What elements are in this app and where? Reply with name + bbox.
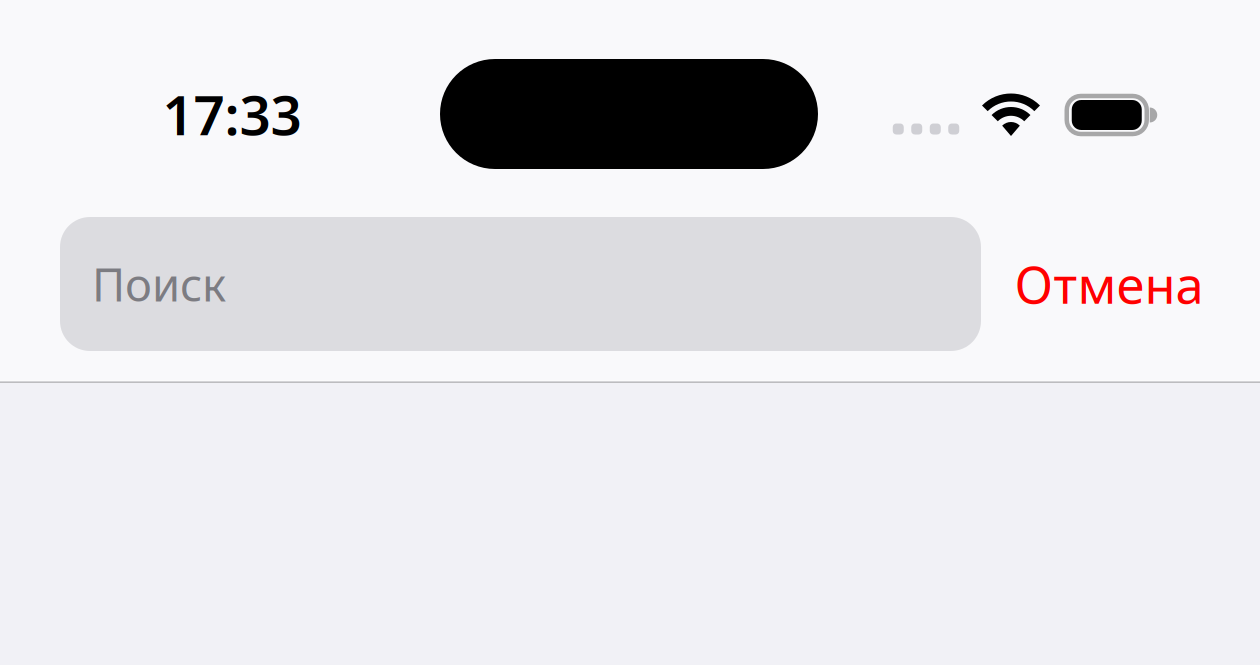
button[interactable]: Отмена [992,217,1226,351]
staticText: 17:33 [162,78,301,150]
button[interactable]: Поиск [60,217,981,351]
staticText: Отмена [1014,250,1203,318]
staticText: Поиск [92,254,226,314]
